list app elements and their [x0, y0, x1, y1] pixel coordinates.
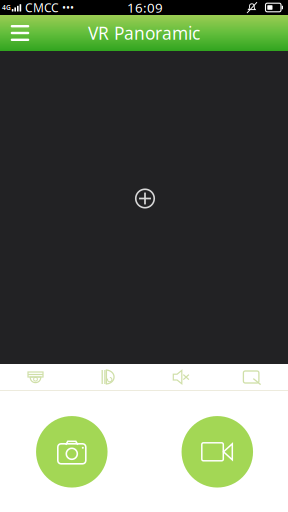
staticText: 4G	[2, 3, 11, 12]
button[interactable]: Mute audio	[144, 364, 216, 390]
staticText: 16:09	[127, 0, 163, 16]
button[interactable]: Record video	[182, 416, 253, 488]
staticText: VR Panoramic	[88, 21, 200, 44]
staticText: CMCC	[22, 0, 59, 15]
button[interactable]: Stream quality	[72, 364, 144, 390]
button[interactable]: Take snapshot	[36, 416, 107, 488]
staticText: •••	[59, 0, 74, 15]
button[interactable]: Full screen	[216, 364, 288, 390]
button[interactable]: Camera list	[0, 364, 72, 390]
button[interactable]: Menu	[0, 15, 40, 51]
button[interactable]: Add camera	[125, 178, 165, 218]
